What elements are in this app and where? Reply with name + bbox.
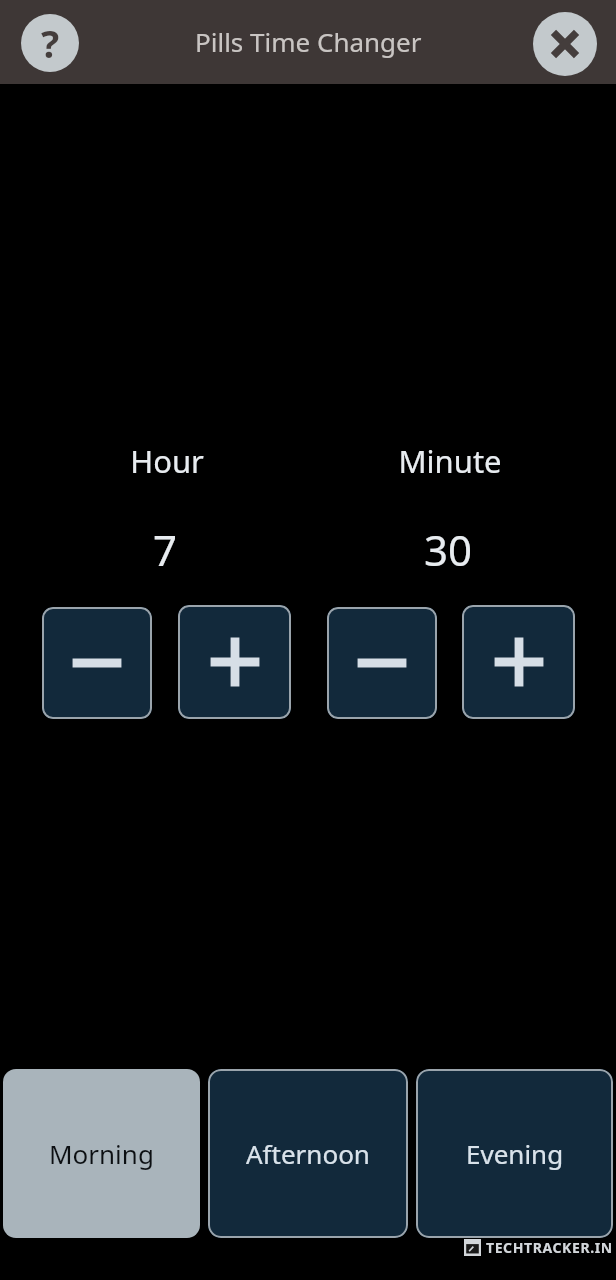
button[interactable]: Afternoon [208,1069,408,1238]
button[interactable]: Morning [3,1069,200,1238]
staticText: Hour [82,440,252,482]
button[interactable]: Increase minute [462,605,575,719]
staticText: Morning [49,1136,154,1171]
staticText: Minute [365,440,535,482]
button[interactable]: Help [21,14,79,72]
button[interactable]: Increase hour [178,605,291,719]
button[interactable]: Evening [416,1069,613,1238]
button[interactable]: Decrease minute [327,607,437,719]
staticText: Afternoon [246,1136,370,1171]
staticText: Evening [466,1136,564,1171]
staticText: TECHTRACKER.IN [486,1238,613,1256]
staticText: 7 [80,521,250,578]
staticText: ? [41,17,60,69]
staticText: 30 [363,521,533,578]
button[interactable]: Close [533,12,597,76]
button[interactable]: Decrease hour [42,607,152,719]
staticText: Pills Time Changer [195,24,422,59]
